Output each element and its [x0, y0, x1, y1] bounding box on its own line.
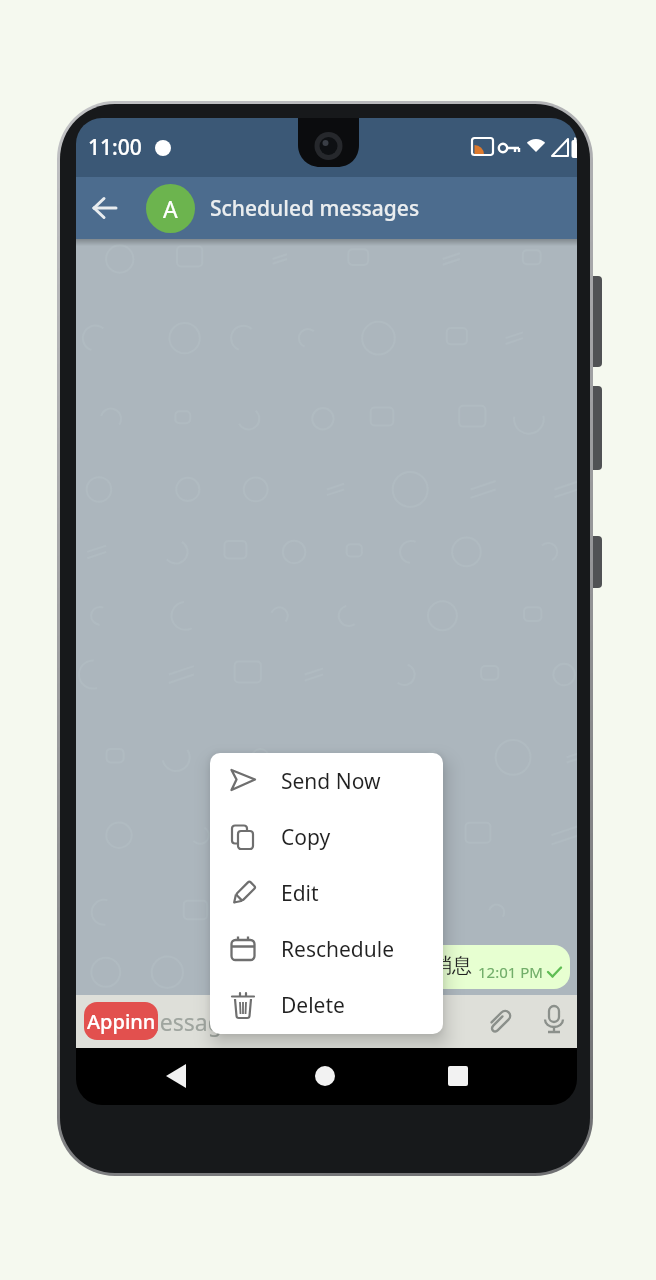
staticText: Delete	[281, 991, 345, 1020]
staticText: Appinn	[87, 1008, 156, 1035]
staticText: Edit	[281, 879, 319, 908]
staticText: Send Now	[281, 767, 381, 796]
button[interactable]	[164, 1064, 188, 1088]
staticText: A	[163, 193, 178, 224]
button[interactable]: Reschedule	[210, 921, 443, 977]
button[interactable]	[448, 1066, 468, 1086]
staticText: 消息	[432, 953, 472, 978]
button[interactable]: Delete	[210, 977, 443, 1033]
staticText: Reschedule	[281, 935, 395, 964]
button[interactable]: Edit	[210, 865, 443, 921]
button[interactable]	[315, 1066, 335, 1086]
button[interactable]: Send Now	[210, 753, 443, 809]
staticText: Message	[139, 1006, 235, 1037]
button[interactable]	[484, 1005, 516, 1037]
staticText: Copy	[281, 823, 331, 852]
staticText: Scheduled messages	[210, 194, 420, 223]
button[interactable]	[538, 1004, 570, 1036]
button[interactable]	[92, 195, 118, 221]
button[interactable]: Copy	[210, 809, 443, 865]
staticText: 12:01 PM	[478, 962, 543, 982]
staticText: 11:00	[88, 133, 142, 162]
button[interactable]: Appinn	[84, 1002, 158, 1040]
